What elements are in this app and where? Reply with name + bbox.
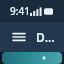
button[interactable]: Menu: [8, 26, 30, 48]
button[interactable]: Today: [2, 52, 62, 64]
staticText: 9:41: [10, 4, 30, 18]
staticText: Dashboard: [36, 29, 56, 45]
staticText: Today: [10, 57, 36, 59]
